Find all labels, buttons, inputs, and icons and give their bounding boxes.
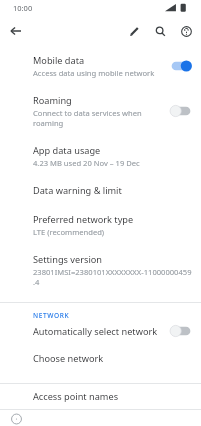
staticText: Access point names: [33, 390, 119, 403]
button[interactable]: Roaming: [0, 84, 201, 134]
button[interactable]: App data usage: [0, 134, 201, 174]
button[interactable]: Settings version: [0, 243, 201, 293]
staticText: LTE (recommended): [33, 227, 105, 237]
staticText: Mobile data: [33, 54, 85, 67]
staticText: Automatically select network: [33, 325, 158, 338]
button[interactable]: Preferred network type: [0, 203, 201, 243]
button[interactable]: Search: [148, 19, 172, 43]
staticText: Data warning & limit: [33, 184, 122, 197]
button[interactable]: Access point names: [0, 384, 201, 409]
button[interactable]: [169, 104, 193, 118]
staticText: Connect to data services when roaming: [33, 108, 142, 128]
staticText: App data usage: [33, 144, 101, 157]
button[interactable]: Choose network: [0, 344, 201, 371]
button[interactable]: Back: [5, 20, 27, 42]
staticText: 4.23 MB used 20 Nov – 19 Dec: [33, 158, 140, 168]
staticText: Choose network: [33, 352, 104, 365]
button[interactable]: Edit: [122, 19, 146, 43]
staticText: 23801IMSI=2380101XXXXXXXX-11000000459.4: [33, 267, 193, 287]
staticText: Roaming: [33, 94, 72, 107]
button[interactable]: [169, 324, 193, 338]
button[interactable]: Automatically select network: [0, 322, 201, 344]
button[interactable]: Help: [174, 19, 198, 43]
button[interactable]: [169, 59, 193, 73]
staticText: Settings version: [33, 253, 102, 266]
staticText: NETWORK: [33, 311, 70, 320]
button[interactable]: Mobile data: [0, 46, 201, 84]
staticText: Preferred network type: [33, 213, 134, 226]
staticText: Access data using mobile network: [33, 68, 155, 78]
button[interactable]: Data warning & limit: [0, 174, 201, 203]
staticText: 10:00: [13, 3, 33, 13]
